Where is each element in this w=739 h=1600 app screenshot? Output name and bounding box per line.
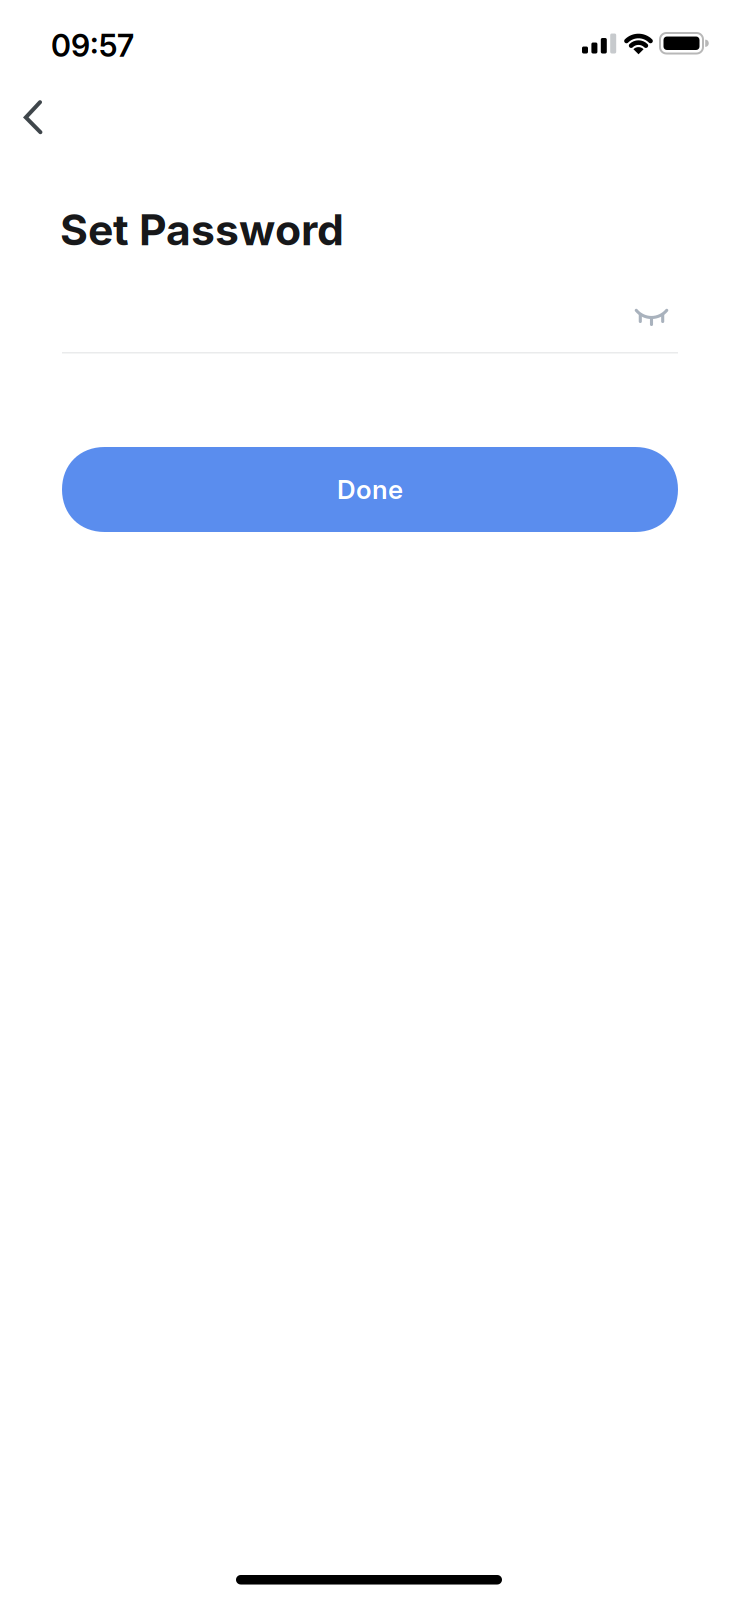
- staticText: 09:57: [51, 27, 134, 64]
- staticText: Set Password: [60, 204, 344, 256]
- button[interactable]: [14, 96, 58, 140]
- button[interactable]: [629, 293, 673, 337]
- staticText: Done: [337, 474, 403, 505]
- button[interactable]: Done: [62, 447, 678, 532]
